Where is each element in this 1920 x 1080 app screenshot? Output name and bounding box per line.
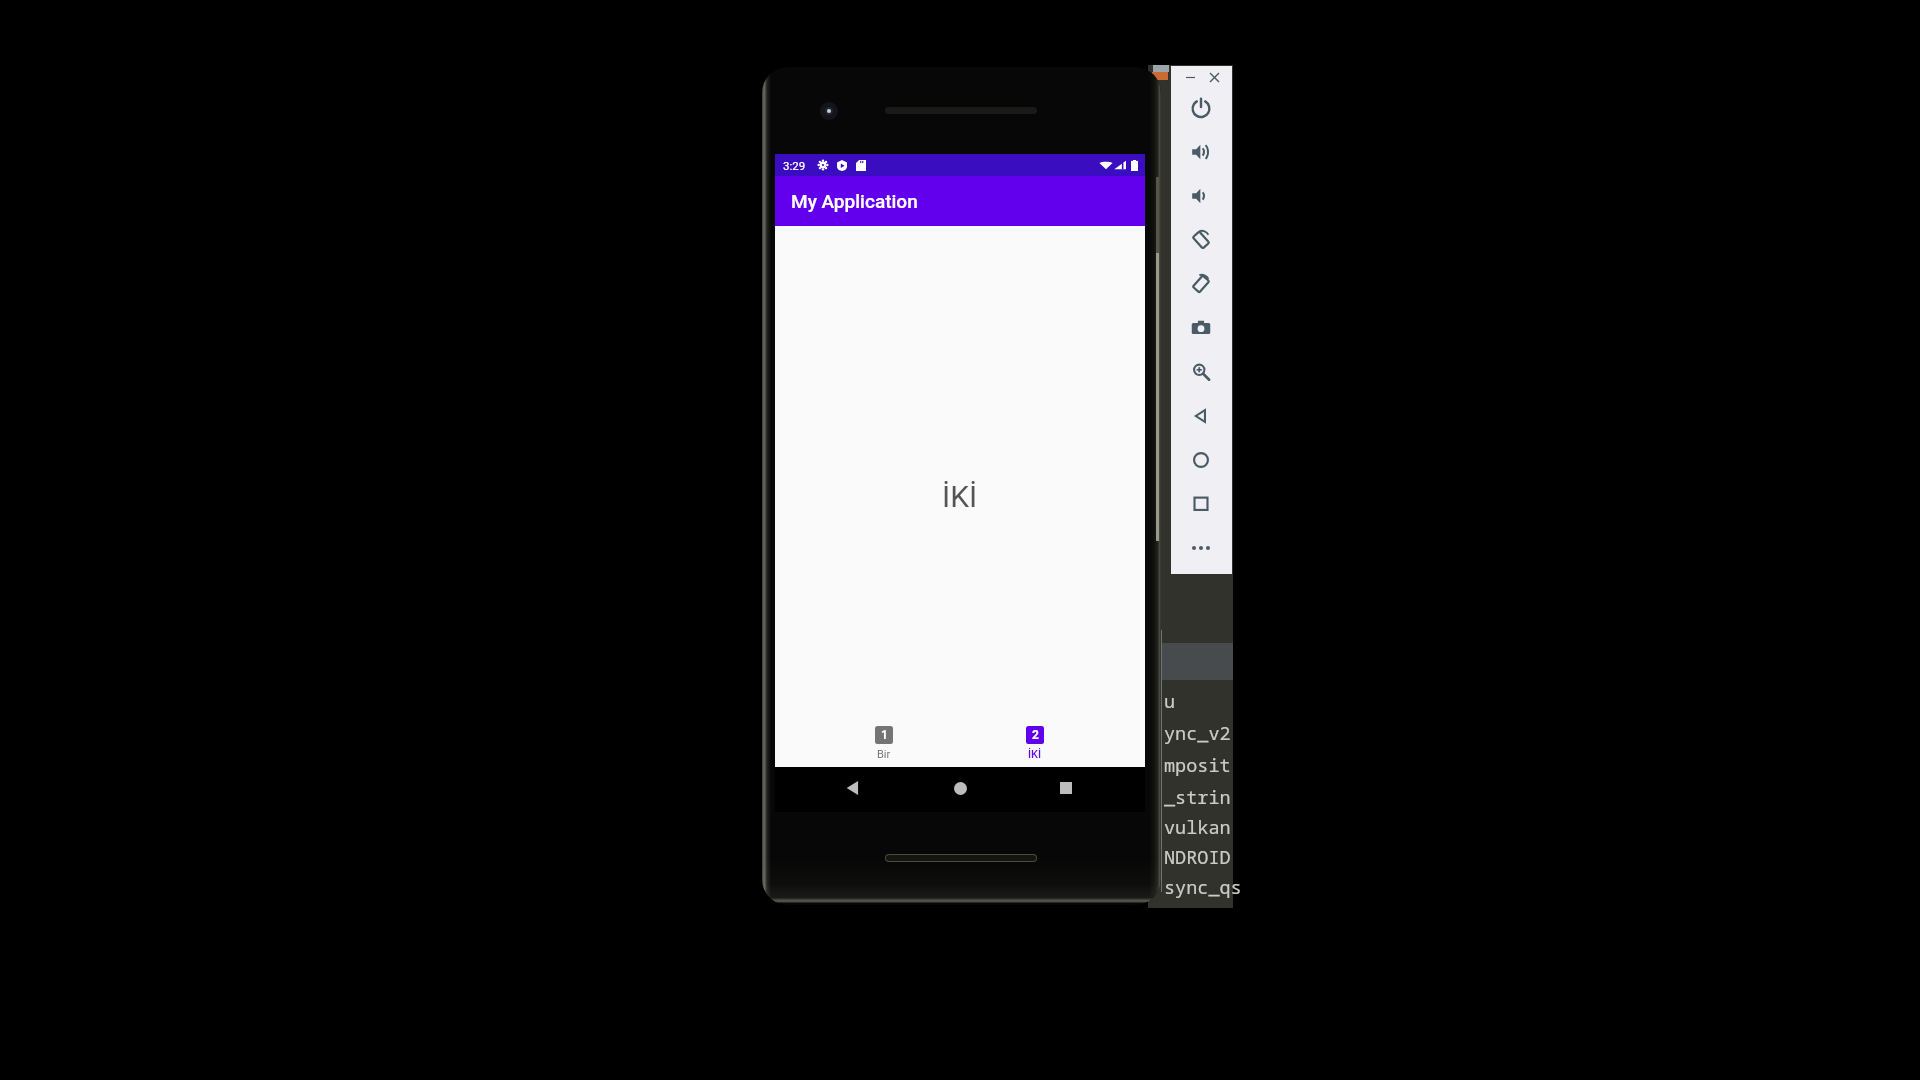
button[interactable]: Overview bbox=[1187, 490, 1215, 518]
button[interactable]: Home bbox=[1187, 446, 1215, 474]
button[interactable]: Volume up bbox=[1187, 138, 1215, 166]
button[interactable]: Recent apps bbox=[1056, 778, 1076, 798]
button[interactable]: Back bbox=[843, 778, 863, 798]
staticText: _strin bbox=[1164, 784, 1231, 809]
staticText: u bbox=[1164, 688, 1176, 713]
button[interactable]: Home bbox=[950, 778, 970, 798]
button[interactable]: 2 bbox=[960, 719, 1145, 767]
button[interactable]: Screenshot bbox=[1187, 314, 1215, 342]
staticText: Bir bbox=[877, 748, 891, 761]
button[interactable]: 1 bbox=[775, 719, 960, 767]
staticText: 2 bbox=[1032, 728, 1039, 742]
staticText: sync_qs bbox=[1164, 874, 1242, 899]
button[interactable]: Rotate left bbox=[1187, 226, 1215, 254]
staticText: 3:29 bbox=[783, 159, 806, 172]
button[interactable]: More bbox=[1187, 534, 1215, 562]
button[interactable]: Power bbox=[1187, 94, 1215, 122]
button[interactable]: Close bbox=[1207, 70, 1221, 84]
button[interactable]: Volume down bbox=[1187, 182, 1215, 210]
staticText: ync_v2 bbox=[1164, 720, 1231, 745]
button[interactable]: Back bbox=[1187, 402, 1215, 430]
staticText: İKİ bbox=[942, 479, 978, 514]
staticText: mposit bbox=[1164, 752, 1231, 777]
button[interactable]: Rotate right bbox=[1187, 270, 1215, 298]
button[interactable]: Minimize bbox=[1183, 70, 1197, 84]
staticText: My Application bbox=[791, 190, 918, 212]
staticText: NDROID bbox=[1164, 844, 1231, 869]
staticText: 1 bbox=[881, 728, 888, 742]
staticText: vulkan bbox=[1164, 814, 1231, 839]
staticText: İKİ bbox=[1028, 748, 1042, 761]
button[interactable]: Zoom bbox=[1187, 358, 1215, 386]
